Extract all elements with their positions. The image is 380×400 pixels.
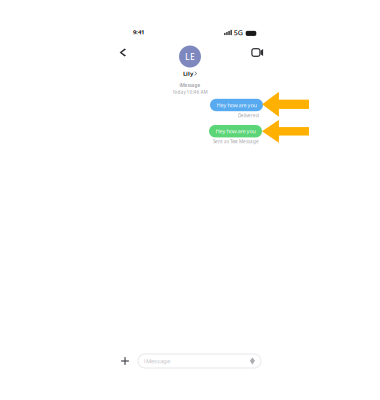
button[interactable]: LE — [179, 45, 201, 77]
staticText: Hey how are you — [215, 127, 255, 135]
staticText: 9:41 — [133, 28, 144, 36]
staticText: Hey how are you — [216, 101, 256, 109]
staticText: Lily — [183, 69, 193, 77]
button[interactable]: FaceTime video call — [248, 42, 266, 62]
button[interactable]: Add attachment — [118, 354, 132, 368]
staticText: Delivered — [238, 112, 259, 118]
staticText: Today 10:46 AM — [172, 89, 207, 95]
button[interactable]: Back — [114, 42, 132, 62]
staticText: iMessage — [144, 357, 170, 365]
staticText: iMessage — [179, 82, 200, 88]
staticText: Sent as Text Message — [213, 138, 259, 144]
button[interactable]: iMessage — [138, 354, 261, 368]
staticText: 5G — [234, 28, 243, 37]
staticText: LE — [185, 51, 195, 62]
